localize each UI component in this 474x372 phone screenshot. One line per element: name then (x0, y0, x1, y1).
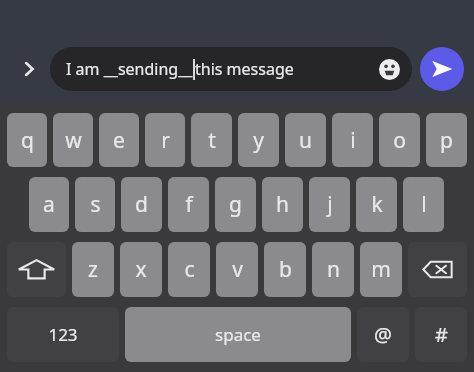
button[interactable]: Emoji (374, 54, 404, 84)
staticText: d (135, 190, 148, 219)
staticText: n (327, 255, 340, 284)
staticText: space (215, 323, 261, 346)
staticText: u (299, 126, 312, 155)
staticText: b (279, 255, 292, 284)
staticText: c (184, 255, 195, 284)
button[interactable]: f (168, 177, 209, 232)
button[interactable]: @ (357, 307, 409, 362)
staticText: r (161, 126, 170, 155)
staticText: h (276, 190, 289, 219)
button[interactable]: i (332, 113, 373, 167)
staticText: w (65, 126, 82, 155)
button[interactable]: y (238, 113, 279, 167)
button[interactable]: d (121, 177, 162, 232)
button[interactable]: v (216, 242, 258, 297)
staticText: # (435, 321, 448, 348)
button[interactable]: e (99, 113, 139, 167)
staticText: q (21, 126, 34, 155)
button[interactable]: n (312, 242, 354, 297)
button[interactable]: r (145, 113, 185, 167)
staticText: o (393, 126, 406, 155)
staticText: p (440, 126, 453, 155)
button[interactable]: g (215, 177, 256, 232)
button[interactable]: 123 (7, 307, 119, 362)
staticText: f (185, 190, 193, 219)
button[interactable]: b (264, 242, 306, 297)
button[interactable]: Send (420, 47, 464, 91)
staticText: s (90, 190, 101, 219)
button[interactable]: z (72, 242, 114, 297)
staticText: v (232, 255, 243, 284)
button[interactable]: c (168, 242, 210, 297)
staticText: k (371, 190, 383, 219)
staticText: z (88, 255, 98, 284)
button[interactable]: j (309, 177, 350, 232)
staticText: t (208, 126, 216, 155)
button[interactable]: w (53, 113, 93, 167)
button[interactable]: Shift (7, 242, 66, 297)
staticText: e (113, 126, 125, 155)
staticText: m (371, 255, 391, 284)
button[interactable]: h (262, 177, 303, 232)
staticText: this message (195, 58, 294, 80)
staticText: j (327, 190, 333, 219)
button[interactable]: o (379, 113, 420, 167)
button[interactable]: t (191, 113, 232, 167)
button[interactable]: k (356, 177, 397, 232)
button[interactable]: # (415, 307, 467, 362)
staticText: a (43, 190, 55, 219)
button[interactable]: Expand (14, 54, 44, 84)
staticText: I am __sending__ (66, 58, 193, 80)
button[interactable]: q (7, 113, 47, 167)
button[interactable]: I am __sending__ (50, 47, 412, 91)
staticText: i (350, 126, 356, 155)
button[interactable]: u (285, 113, 326, 167)
staticText: x (135, 255, 147, 284)
staticText: 123 (48, 323, 78, 346)
button[interactable]: Backspace (408, 242, 467, 297)
button[interactable]: space (125, 307, 351, 362)
button[interactable]: s (75, 177, 115, 232)
staticText: g (229, 190, 242, 219)
button[interactable]: x (120, 242, 162, 297)
button[interactable]: p (426, 113, 467, 167)
button[interactable]: m (360, 242, 402, 297)
staticText: @ (374, 321, 392, 348)
button[interactable]: l (403, 177, 444, 232)
staticText: l (421, 190, 427, 219)
staticText: y (253, 126, 264, 155)
button[interactable]: a (29, 177, 69, 232)
